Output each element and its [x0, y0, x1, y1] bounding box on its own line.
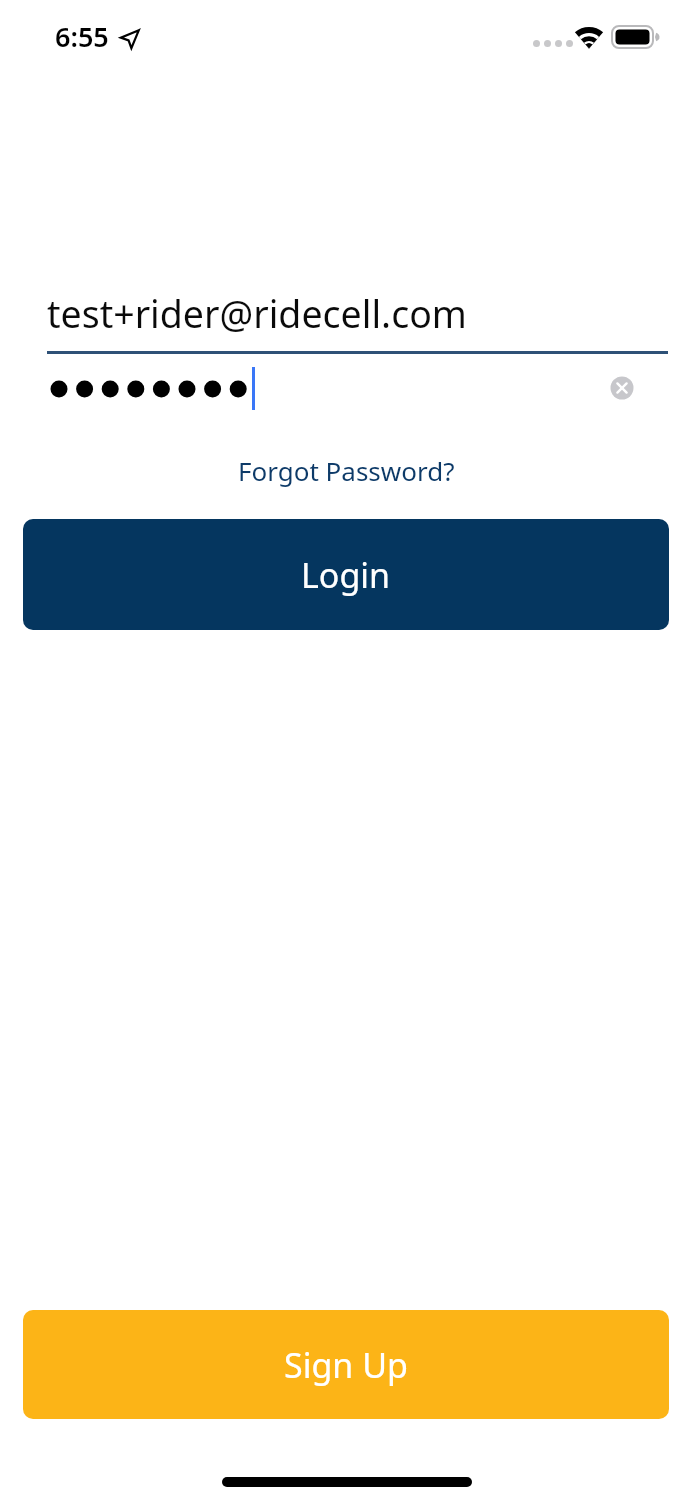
button[interactable]: Login: [23, 519, 669, 630]
staticText: Sign Up: [284, 1342, 408, 1388]
staticText: test+rider@ridecell.com: [47, 288, 467, 339]
staticText: Login: [301, 552, 391, 598]
button[interactable]: Forgot Password?: [0, 453, 693, 488]
button[interactable]: Sign Up: [23, 1310, 669, 1419]
button[interactable]: [47, 362, 668, 414]
staticText: Forgot Password?: [238, 453, 455, 488]
staticText: 6:55: [55, 18, 109, 55]
